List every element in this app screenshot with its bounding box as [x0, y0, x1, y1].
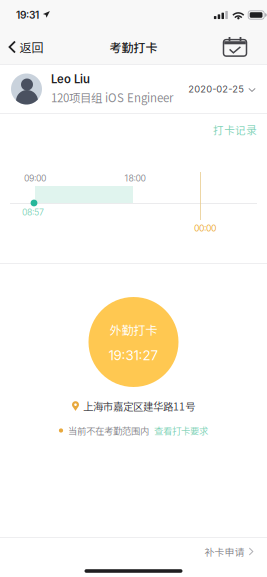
staticText: 19:31:27 [108, 347, 158, 363]
staticText: 当前不在考勤范围内 [68, 424, 149, 437]
button[interactable]: 返回 [0, 30, 51, 64]
staticText: 考勤打卡 [109, 38, 157, 56]
staticText: Leo Liu [51, 72, 90, 86]
button[interactable]: 考勤日历 [213, 30, 267, 64]
staticText: 120项目组 iOS Engineer [51, 89, 173, 106]
staticText: 查看打卡要求 [154, 424, 208, 437]
button[interactable]: 补卡申请 [192, 538, 267, 565]
button[interactable]: 外勤打卡 [88, 297, 178, 387]
staticText: 19:31 [16, 9, 39, 21]
staticText: 返回 [19, 38, 43, 56]
staticText: 00:00 [194, 223, 216, 233]
button[interactable]: 查看打卡要求 [154, 424, 208, 437]
staticText: 打卡记录 [213, 122, 257, 137]
staticText: 外勤打卡 [109, 321, 157, 338]
staticText: 18:00 [124, 173, 145, 183]
staticText: 补卡申请 [204, 544, 244, 559]
button[interactable]: 2020-02-25 [182, 67, 267, 111]
staticText: 上海市嘉定区建华路11号 [83, 398, 195, 414]
staticText: 08:57 [22, 207, 44, 217]
staticText: 09:00 [24, 173, 46, 183]
staticText: 2020-02-25 [188, 83, 244, 95]
button[interactable]: 打卡记录 [203, 114, 267, 145]
